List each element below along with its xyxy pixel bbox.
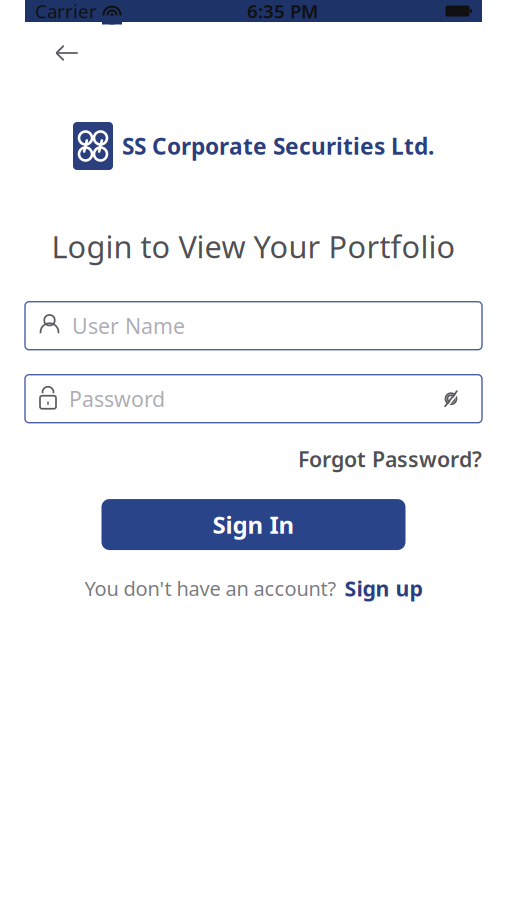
staticText: 6:35 PM bbox=[247, 0, 318, 23]
staticText: You don't have an account? bbox=[84, 575, 336, 601]
button[interactable]: Back bbox=[44, 31, 90, 75]
staticText: User Name bbox=[72, 312, 185, 340]
staticText: SS Corporate Securities Ltd. bbox=[122, 131, 434, 161]
staticText: Carrier bbox=[35, 0, 97, 23]
staticText: Password bbox=[69, 385, 165, 413]
button[interactable]: Sign In bbox=[101, 499, 405, 550]
staticText: Sign In bbox=[212, 509, 294, 540]
staticText: Login to View Your Portfolio bbox=[51, 226, 455, 267]
button[interactable]: Show password bbox=[434, 379, 468, 419]
button[interactable]: Sign up bbox=[344, 574, 422, 602]
staticText: Forgot Password? bbox=[298, 445, 482, 473]
staticText: Sign up bbox=[344, 574, 422, 602]
button[interactable]: Forgot Password? bbox=[298, 441, 482, 477]
